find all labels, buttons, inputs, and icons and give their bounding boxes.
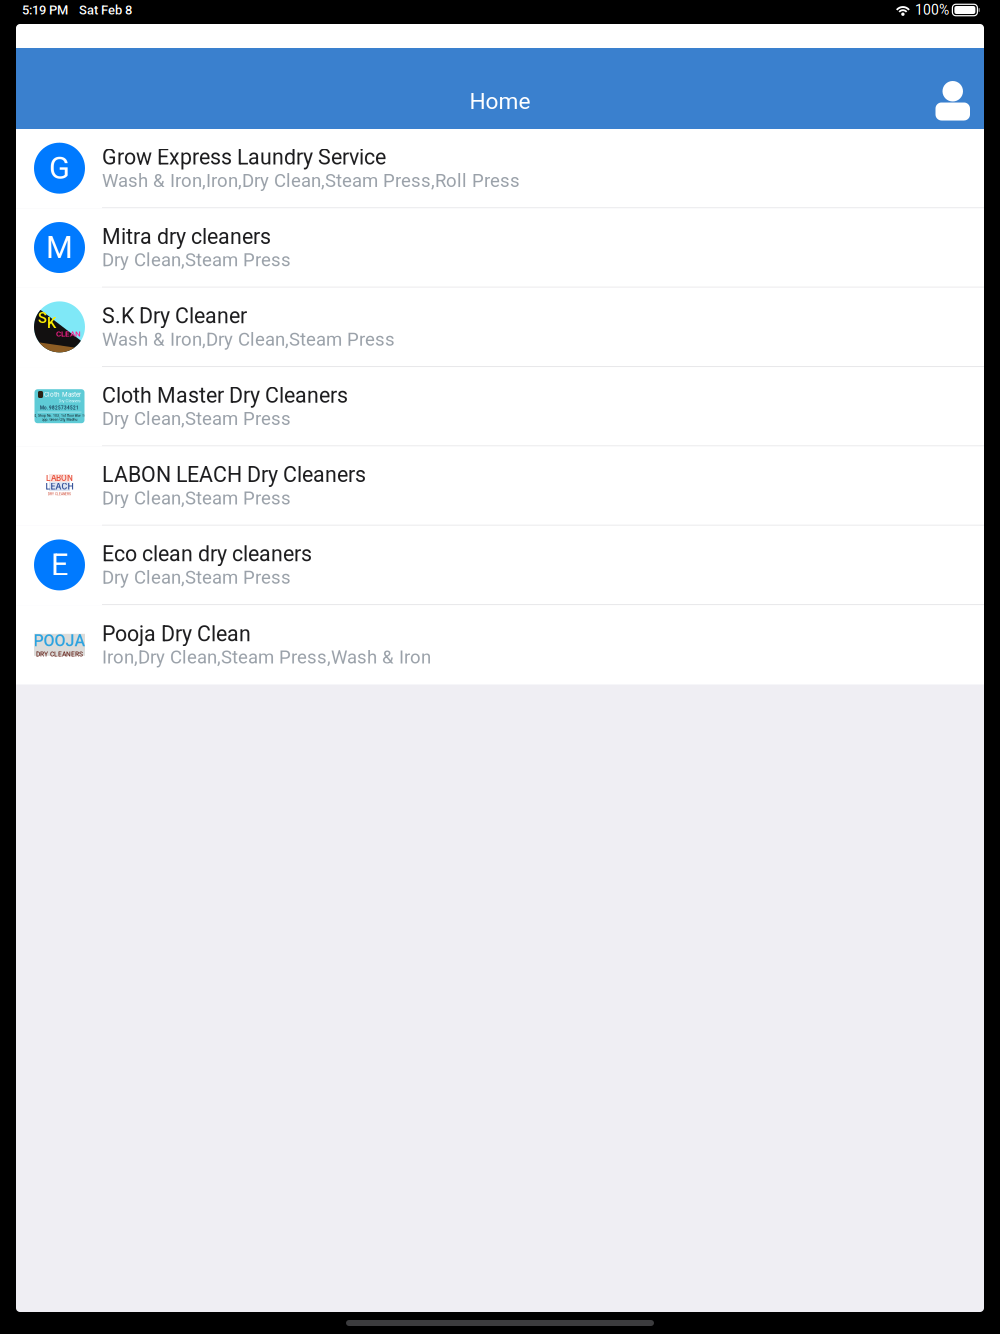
staticText: Dry Clean,Steam Press	[102, 567, 291, 588]
staticText: A/4, Shop No. 103, 1st floor Blw Trn,	[31, 414, 88, 418]
staticText: 100%	[915, 2, 949, 18]
staticText: Cloth Master	[44, 391, 81, 398]
staticText: Sat Feb 8	[79, 2, 132, 18]
button[interactable]: Cloth Master	[16, 367, 984, 446]
button[interactable]: G	[16, 129, 984, 208]
staticText: Dry Cleaners	[58, 398, 80, 403]
staticText: Dry Clean,Steam Press	[102, 408, 291, 430]
staticText: Dry Clean,Steam Press	[102, 249, 291, 271]
button[interactable]: LABON	[16, 446, 984, 526]
button[interactable]: M	[16, 208, 984, 288]
staticText: 5:19 PM	[22, 2, 68, 18]
button[interactable]: Account	[935, 48, 984, 120]
staticText: CLEAN	[56, 329, 81, 339]
staticText: Dry Clean,Steam Press	[102, 487, 291, 509]
staticText: POOJA	[33, 631, 85, 650]
button[interactable]: POOJA	[16, 605, 984, 684]
staticText: Eco clean dry cleaners	[102, 542, 312, 567]
staticText: Home	[469, 88, 530, 115]
staticText: Mitra dry cleaners	[102, 224, 271, 249]
staticText: Mo. 9825734521	[40, 405, 79, 411]
staticText: S.K Dry Cleaner	[102, 303, 247, 328]
staticText: DRY CLEANERS	[48, 492, 71, 496]
staticText: G	[49, 150, 70, 186]
staticText: Cloth Master Dry Cleaners	[102, 383, 348, 408]
staticText: Grow Express Laundry Service	[102, 145, 386, 170]
staticText: DRY CLEANERS	[36, 650, 83, 658]
staticText: Iron,Dry Clean,Steam Press,Wash & Iron	[102, 646, 431, 668]
staticText: Pooja Dry Clean	[102, 621, 251, 646]
staticText: opp. Green City, Madhu	[41, 418, 77, 422]
button[interactable]: S	[16, 288, 984, 367]
staticText: LABON LEACH Dry Cleaners	[102, 462, 366, 487]
staticText: E	[51, 547, 68, 583]
staticText: LEACH	[45, 481, 73, 492]
button[interactable]: E	[16, 526, 984, 605]
staticText: Wash & Iron,Iron,Dry Clean,Steam Press,R…	[102, 170, 520, 191]
staticText: S	[38, 309, 47, 326]
staticText: LABON	[46, 473, 73, 483]
staticText: M	[46, 230, 73, 265]
staticText: Wash & Iron,Dry Clean,Steam Press	[102, 328, 395, 350]
staticText: K	[47, 314, 56, 331]
